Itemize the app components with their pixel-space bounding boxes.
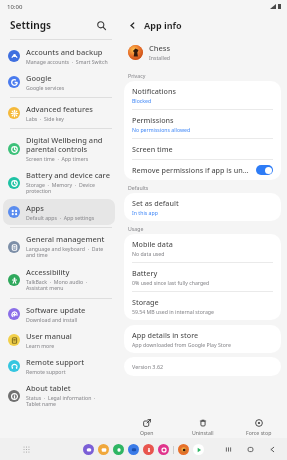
button[interactable]: lock (143, 444, 154, 455)
button[interactable]: Remove permissions if app is unused (124, 160, 281, 180)
staticText: 59.54 MB used in internal storage (132, 308, 214, 315)
staticText: Download and install (26, 316, 78, 323)
button[interactable]: photo (158, 444, 169, 455)
button[interactable]: phone (113, 444, 124, 455)
button[interactable]: Battery and device care (3, 166, 115, 199)
staticText: Set as default (132, 198, 179, 208)
button[interactable]: folder (98, 444, 109, 455)
button[interactable]: Back (266, 443, 279, 456)
button[interactable]: App details in store (124, 325, 281, 353)
staticText: Labs · Side key (26, 115, 64, 122)
staticText: Software update (26, 305, 86, 315)
button[interactable]: Recents (222, 443, 235, 456)
staticText: Blocked (132, 97, 152, 104)
button[interactable]: User manual (3, 327, 115, 353)
button[interactable]: General management (3, 230, 115, 263)
staticText: User manual (26, 331, 72, 341)
button[interactable]: About tablet (3, 379, 115, 412)
button[interactable]: Home (244, 443, 257, 456)
staticText: App downloaded from Google Play Store (132, 341, 231, 348)
staticText: Storage · Memory · Device protection (26, 181, 110, 195)
staticText: Battery (132, 268, 158, 278)
staticText: Screen time (132, 144, 173, 154)
staticText: Chess (149, 43, 171, 53)
button[interactable]: Software update (3, 301, 115, 327)
staticText: General management (26, 234, 105, 244)
staticText: Learn more (26, 342, 55, 349)
staticText: App details in store (132, 330, 199, 340)
staticText: Default apps · App settings (26, 214, 95, 221)
staticText: Storage (132, 297, 159, 307)
button[interactable]: play (193, 444, 204, 455)
button[interactable]: Back (124, 17, 140, 33)
button[interactable]: Open (118, 416, 175, 438)
staticText: Privacy (128, 72, 146, 79)
button[interactable]: chat (128, 444, 139, 455)
button[interactable]: Remote support (3, 353, 115, 379)
staticText: No permissions allowed (132, 126, 191, 133)
staticText: Language and keyboard · Date and time (26, 245, 110, 259)
staticText: Usage (128, 225, 144, 232)
button[interactable]: All apps (20, 443, 32, 455)
button[interactable]: Apps (3, 199, 115, 225)
staticText: Accessibility (26, 267, 70, 277)
staticText: TalkBack · Mono audio · Assistant menu (26, 278, 110, 292)
staticText: Battery and device care (26, 170, 110, 180)
staticText: Open (140, 429, 154, 436)
staticText: Installed (149, 54, 171, 61)
staticText: Advanced features (26, 104, 93, 114)
staticText: Google services (26, 84, 65, 91)
staticText: App info (144, 19, 182, 31)
staticText: Remote support (26, 368, 66, 375)
staticText: Force stop (246, 429, 272, 436)
staticText: Version 3.62 (132, 363, 164, 370)
staticText: Digital Wellbeing and parental controls (26, 135, 110, 154)
button[interactable]: Accessibility (3, 263, 115, 296)
staticText: Apps (26, 203, 44, 213)
staticText: Settings (10, 18, 51, 32)
button[interactable]: Accounts and backup (3, 43, 115, 69)
staticText: Mobile data (132, 239, 173, 249)
button[interactable]: Permissions (124, 110, 281, 139)
staticText: Screen time · App timers (26, 155, 89, 162)
staticText: Accounts and backup (26, 47, 103, 57)
button[interactable]: Screen time (124, 139, 281, 160)
button[interactable]: Battery (124, 263, 281, 292)
button[interactable]: Digital Wellbeing and parental controls (3, 131, 115, 166)
button[interactable]: Search (92, 16, 110, 34)
button[interactable]: Storage (124, 292, 281, 320)
staticText: Remove permissions if app is unused (132, 165, 252, 175)
staticText: Status · Legal information · Tablet name (26, 394, 110, 408)
staticText: Permissions (132, 115, 174, 125)
staticText: Notifications (132, 86, 176, 96)
button[interactable]: Notifications (124, 81, 281, 110)
button[interactable]: Uninstall (175, 416, 231, 438)
button[interactable]: Mobile data (124, 234, 281, 263)
button[interactable]: Force stop (231, 416, 287, 438)
staticText: Defaults (128, 184, 149, 191)
staticText: No data used (132, 250, 165, 257)
staticText: Manage accounts · Smart Switch (26, 58, 108, 65)
staticText: 0% used since last fully charged (132, 279, 210, 286)
button[interactable]: chess (178, 444, 189, 455)
button[interactable]: Google (3, 69, 115, 95)
staticText: Remote support (26, 357, 85, 367)
staticText: Google (26, 73, 52, 83)
button[interactable]: Set as default (124, 193, 281, 221)
staticText: 10:00 (7, 3, 23, 11)
staticText: About tablet (26, 383, 71, 393)
staticText: In this app (132, 209, 158, 216)
staticText: Uninstall (192, 429, 214, 436)
button[interactable]: msg (83, 444, 94, 455)
button[interactable]: Advanced features (3, 100, 115, 126)
